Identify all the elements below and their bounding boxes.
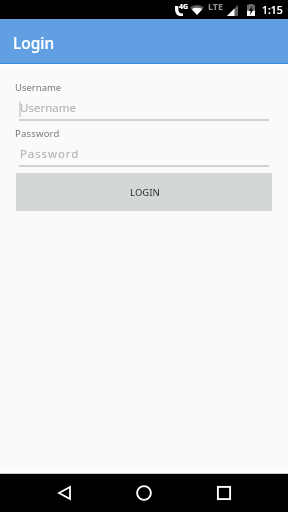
staticText: Login (13, 32, 55, 53)
button[interactable]: LOGIN (16, 173, 272, 211)
staticText: 4G (179, 2, 189, 12)
button[interactable]: Back (37, 474, 91, 512)
staticText: Password (20, 146, 80, 162)
staticText: LOGIN (130, 186, 160, 199)
staticText: 1:15 (262, 3, 283, 17)
button[interactable]: Recent apps (197, 474, 251, 512)
staticText: Username (15, 81, 62, 94)
staticText: LTE (208, 0, 224, 12)
staticText: Username (20, 100, 76, 116)
staticText: Password (15, 127, 60, 140)
button[interactable]: Home (117, 474, 171, 512)
